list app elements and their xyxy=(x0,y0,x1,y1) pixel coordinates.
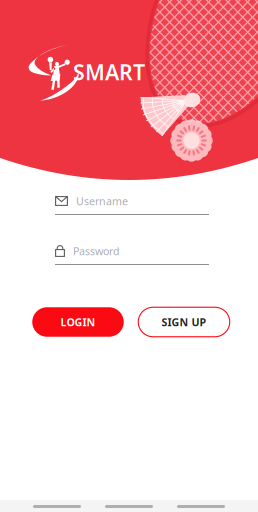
staticText: Password xyxy=(73,244,120,258)
staticText: LOGIN xyxy=(60,315,95,329)
staticText: Username xyxy=(76,194,128,208)
button[interactable]: LOGIN xyxy=(32,307,124,337)
staticText: SMART xyxy=(73,58,145,86)
staticText: SIGN UP xyxy=(161,315,206,329)
button[interactable]: SIGN UP xyxy=(138,307,230,337)
